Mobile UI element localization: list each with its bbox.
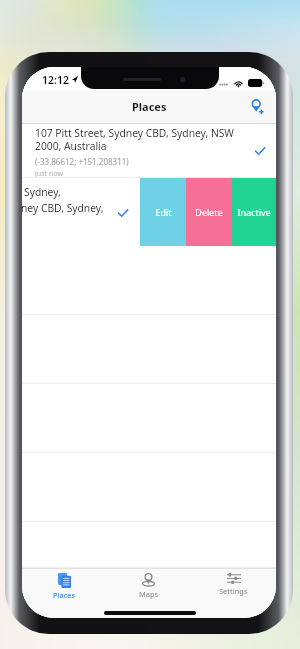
staticText: Sydney, [24,185,61,199]
staticText: Maps [139,589,159,599]
button[interactable]: Add place [246,96,268,118]
button[interactable]: 107 Pitt Street, Sydney CBD, Sydney, NSW… [22,124,276,178]
button[interactable]: Inactive [232,178,276,246]
button[interactable]: Places [22,569,106,602]
staticText: ney CBD, Sydney, [22,201,104,215]
staticText: Inactive [237,206,271,218]
staticText: Places [53,590,76,600]
button[interactable]: Edit [140,178,186,246]
button[interactable]: Delete [186,178,232,246]
staticText: Delete [195,206,223,218]
staticText: Places [132,99,167,114]
staticText: Edit [155,206,172,218]
staticText: just now [35,168,64,178]
staticText: 107 Pitt Street, Sydney CBD, Sydney, NSW… [35,126,237,153]
button[interactable]: Maps [106,569,191,602]
staticText: Settings [219,586,248,596]
button[interactable]: Settings [191,569,276,602]
staticText: 12:12 [42,73,69,87]
staticText: (-33.86612; +151.208311) [35,156,129,167]
